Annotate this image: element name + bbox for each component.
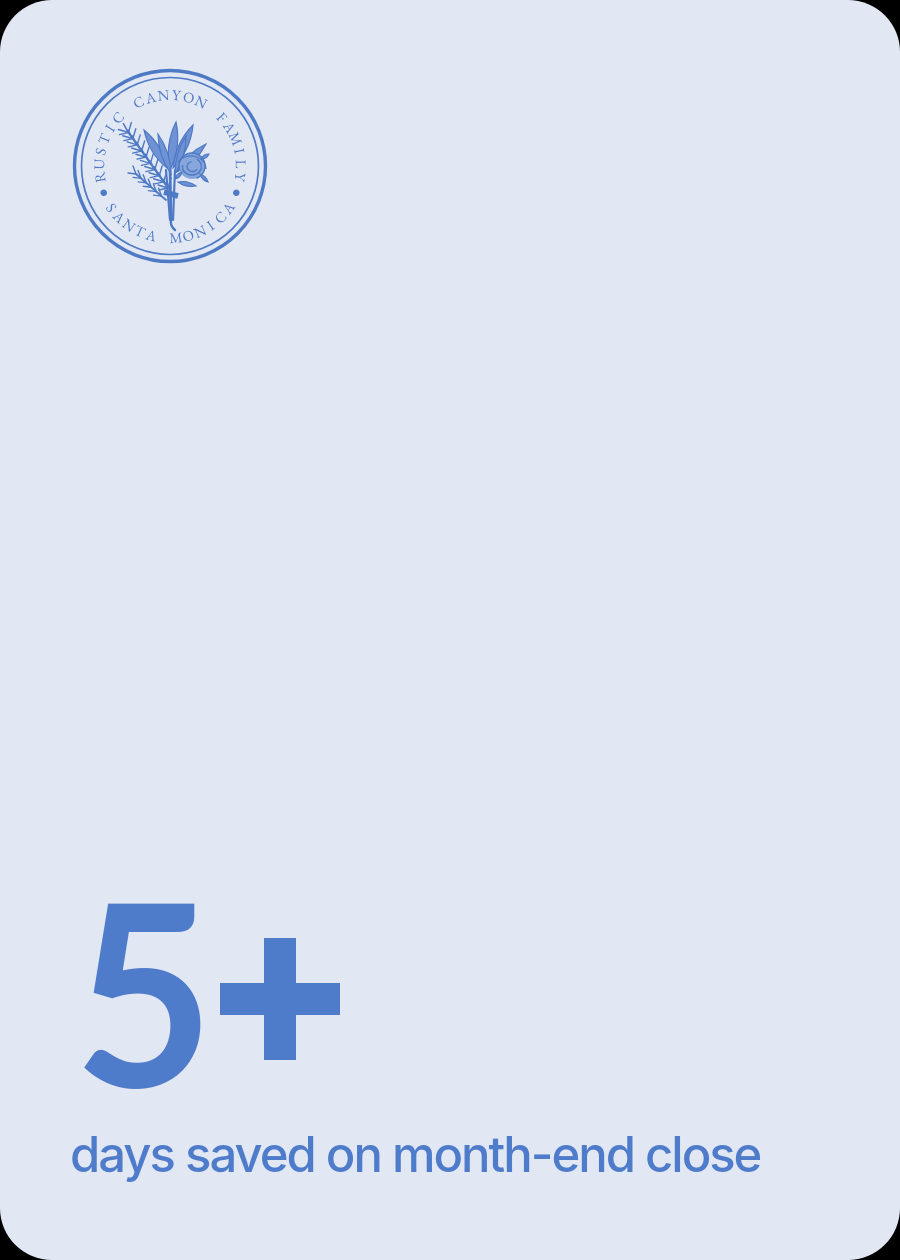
staticText: 5 (74, 836, 214, 1141)
button[interactable]: 5 (0, 0, 900, 1260)
staticText: days saved on month-end close (70, 1125, 761, 1184)
